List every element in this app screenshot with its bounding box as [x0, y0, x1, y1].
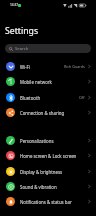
- button[interactable]: Wi-Fi: [0, 59, 96, 74]
- staticText: Display & brightness: [20, 169, 63, 175]
- staticText: Connection & sharing: [20, 110, 65, 116]
- staticText: Notifications & status bar: [20, 199, 72, 205]
- button[interactable]: Sound & vibration: [0, 179, 96, 194]
- staticText: Personalizations: [20, 138, 54, 144]
- staticText: Off: [79, 95, 85, 100]
- button[interactable]: Home screen & Lock screen: [0, 148, 96, 163]
- button[interactable]: Mobile network: [0, 74, 96, 89]
- staticText: Home screen & Lock screen: [20, 153, 77, 159]
- button[interactable]: Connection & sharing: [0, 105, 96, 120]
- button[interactable]: Search: [5, 44, 91, 53]
- button[interactable]: Bluetooth: [0, 90, 96, 105]
- staticText: Settings: [5, 25, 39, 37]
- button[interactable]: Display & brightness: [0, 164, 96, 179]
- button[interactable]: Notifications & status bar: [0, 194, 96, 209]
- staticText: 14:37: [10, 3, 19, 7]
- staticText: Mobile network: [20, 79, 52, 85]
- staticText: Wi-Fi: [20, 64, 30, 70]
- button[interactable]: Personalizations: [0, 133, 96, 148]
- staticText: Bluetooth: [20, 95, 41, 101]
- staticText: Sound & vibration: [20, 184, 57, 190]
- staticText: Rich Guards: [64, 64, 85, 69]
- staticText: Search: [15, 46, 29, 52]
